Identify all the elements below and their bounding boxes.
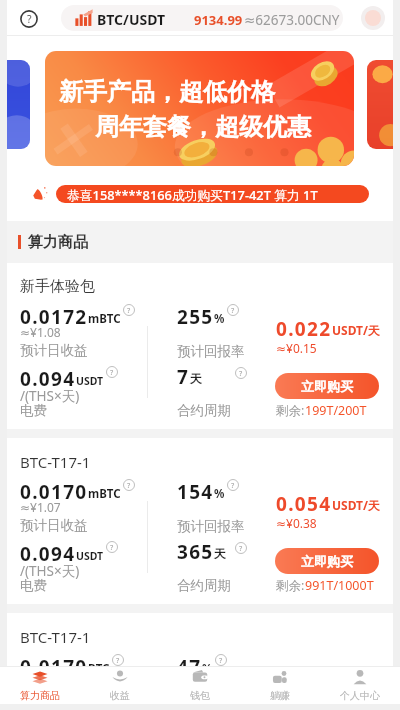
staticText: 合约周期 bbox=[177, 577, 231, 594]
staticText: USDT/天 bbox=[332, 672, 381, 688]
staticText: /(THS×天) bbox=[20, 562, 80, 580]
button[interactable]: 恭喜158****8166成功购买T17-42T 算力 1T bbox=[56, 185, 369, 203]
button[interactable]: 收益 bbox=[80, 667, 160, 704]
button[interactable]: 立即购买 bbox=[275, 548, 379, 574]
staticText: 算力商品 bbox=[28, 233, 88, 252]
staticText: BTC-T17-1 bbox=[20, 627, 91, 647]
staticText: 立即购买 bbox=[301, 378, 353, 394]
staticText: 钱包 bbox=[190, 689, 210, 702]
staticText: 周年套餐，超级优惠 bbox=[95, 112, 311, 142]
staticText: 预计日收益 bbox=[20, 692, 88, 709]
staticText: mBTC bbox=[88, 486, 121, 502]
staticText: BTC/USDT bbox=[97, 10, 166, 29]
staticText: mBTC bbox=[88, 311, 121, 327]
staticText: 电费 bbox=[20, 402, 47, 419]
staticText: 剩余: bbox=[276, 577, 305, 594]
staticText: % bbox=[214, 311, 225, 327]
staticText: ≈¥1.08 bbox=[20, 324, 61, 340]
button[interactable]: Profile bbox=[361, 6, 385, 30]
staticText: 0.054 bbox=[276, 666, 332, 692]
button[interactable]: 钱包 bbox=[160, 667, 240, 704]
staticText: ? bbox=[110, 367, 114, 377]
staticText: 0.0172 bbox=[20, 304, 88, 330]
staticText: 新手产品，超低价格 bbox=[59, 77, 275, 107]
staticText: ? bbox=[27, 12, 32, 26]
staticText: ? bbox=[219, 655, 223, 665]
staticText: BTC bbox=[88, 661, 110, 677]
staticText: 电费 bbox=[20, 577, 47, 594]
staticText: ≈¥1.07 bbox=[20, 499, 61, 515]
staticText: 预计回报率 bbox=[177, 693, 245, 710]
staticText: 新手体验包 bbox=[20, 277, 95, 296]
button[interactable]: 立即购买 bbox=[275, 373, 379, 399]
staticText: ≈¥1.07 bbox=[20, 674, 61, 690]
staticText: ? bbox=[239, 543, 243, 553]
staticText: ? bbox=[239, 368, 243, 378]
staticText: 9134.99 bbox=[194, 11, 243, 29]
staticText: 预计回报率 bbox=[177, 343, 245, 360]
staticText: /(THS×天) bbox=[20, 387, 80, 405]
staticText: 个人中心 bbox=[340, 689, 380, 702]
staticText: USDT/天 bbox=[332, 322, 381, 338]
staticText: ≈62673.00CNY bbox=[244, 11, 340, 29]
staticText: ? bbox=[231, 305, 235, 315]
staticText: ? bbox=[231, 480, 235, 490]
button[interactable]: 个人中心 bbox=[320, 667, 400, 704]
staticText: USDT/天 bbox=[332, 497, 381, 513]
staticText: 365 bbox=[177, 539, 214, 565]
staticText: ≈¥0.38 bbox=[276, 690, 317, 706]
staticText: 0.094 bbox=[20, 541, 76, 567]
staticText: ≈¥0.38 bbox=[276, 515, 317, 531]
button[interactable]: 躺赚 bbox=[240, 667, 320, 704]
staticText: 0.0170 bbox=[20, 479, 88, 505]
staticText: 199T/200T bbox=[305, 402, 367, 419]
staticText: 7 bbox=[177, 364, 190, 390]
staticText: 天 bbox=[214, 546, 226, 561]
staticText: 0.0170 bbox=[20, 654, 88, 680]
staticText: ? bbox=[110, 542, 114, 552]
staticText: 收益 bbox=[110, 689, 130, 702]
staticText: 合约周期 bbox=[177, 402, 231, 419]
staticText: 47 bbox=[177, 654, 202, 680]
staticText: ? bbox=[116, 655, 120, 665]
staticText: ≈¥0.15 bbox=[276, 340, 317, 356]
staticText: BTC-T17-1 bbox=[20, 452, 91, 472]
staticText: 算力商品 bbox=[20, 689, 60, 702]
button[interactable]: 新手产品，超低价格 bbox=[45, 51, 354, 166]
staticText: USDT bbox=[76, 374, 104, 388]
staticText: 立即购买 bbox=[301, 553, 353, 569]
staticText: 天 bbox=[190, 371, 202, 386]
staticText: 预计日收益 bbox=[20, 342, 88, 359]
button[interactable]: BTC/USDT bbox=[61, 5, 343, 31]
staticText: % bbox=[214, 486, 225, 502]
staticText: 剩余: bbox=[276, 402, 305, 419]
staticText: 躺赚 bbox=[270, 689, 290, 702]
staticText: ? bbox=[127, 480, 131, 490]
staticText: 恭喜158****8166成功购买T17-42T 算力 1T bbox=[67, 186, 318, 203]
staticText: USDT bbox=[76, 549, 104, 563]
button[interactable]: Help bbox=[20, 10, 38, 28]
staticText: 预计日收益 bbox=[20, 517, 88, 534]
staticText: 0.094 bbox=[20, 366, 76, 392]
staticText: 0.054 bbox=[276, 491, 332, 517]
staticText: % bbox=[202, 661, 213, 677]
staticText: 255 bbox=[177, 304, 214, 330]
staticText: ? bbox=[127, 305, 131, 315]
staticText: 154 bbox=[177, 479, 214, 505]
staticText: 预计回报率 bbox=[177, 518, 245, 535]
staticText: 991T/1000T bbox=[305, 577, 374, 594]
button[interactable]: 算力商品 bbox=[0, 667, 80, 704]
staticText: 0.022 bbox=[276, 316, 332, 342]
